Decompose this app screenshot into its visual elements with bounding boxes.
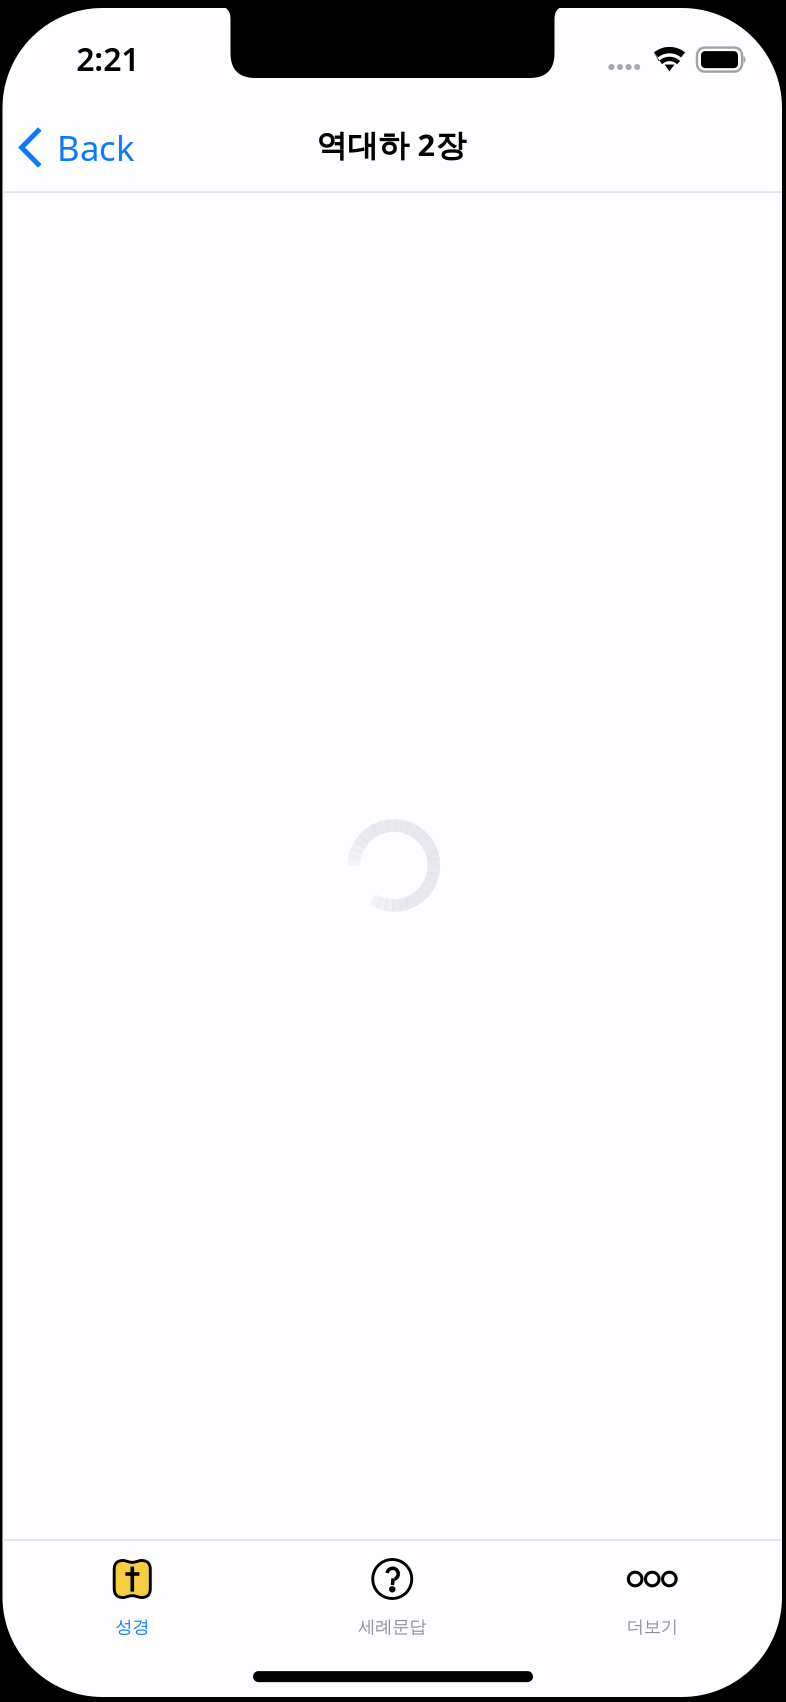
button[interactable]: 성경 [2,1540,262,1697]
staticText: 더보기 [627,1616,678,1637]
button[interactable]: 세례문답 [262,1540,522,1697]
button[interactable]: 더보기 [522,1540,782,1697]
staticText: 성경 [115,1616,149,1637]
staticText: 역대하 2장 [316,124,466,165]
staticText: 2:21 [76,37,139,80]
staticText: 세례문답 [358,1616,426,1637]
staticText: Back [57,124,135,170]
button[interactable]: Back [2,104,152,190]
